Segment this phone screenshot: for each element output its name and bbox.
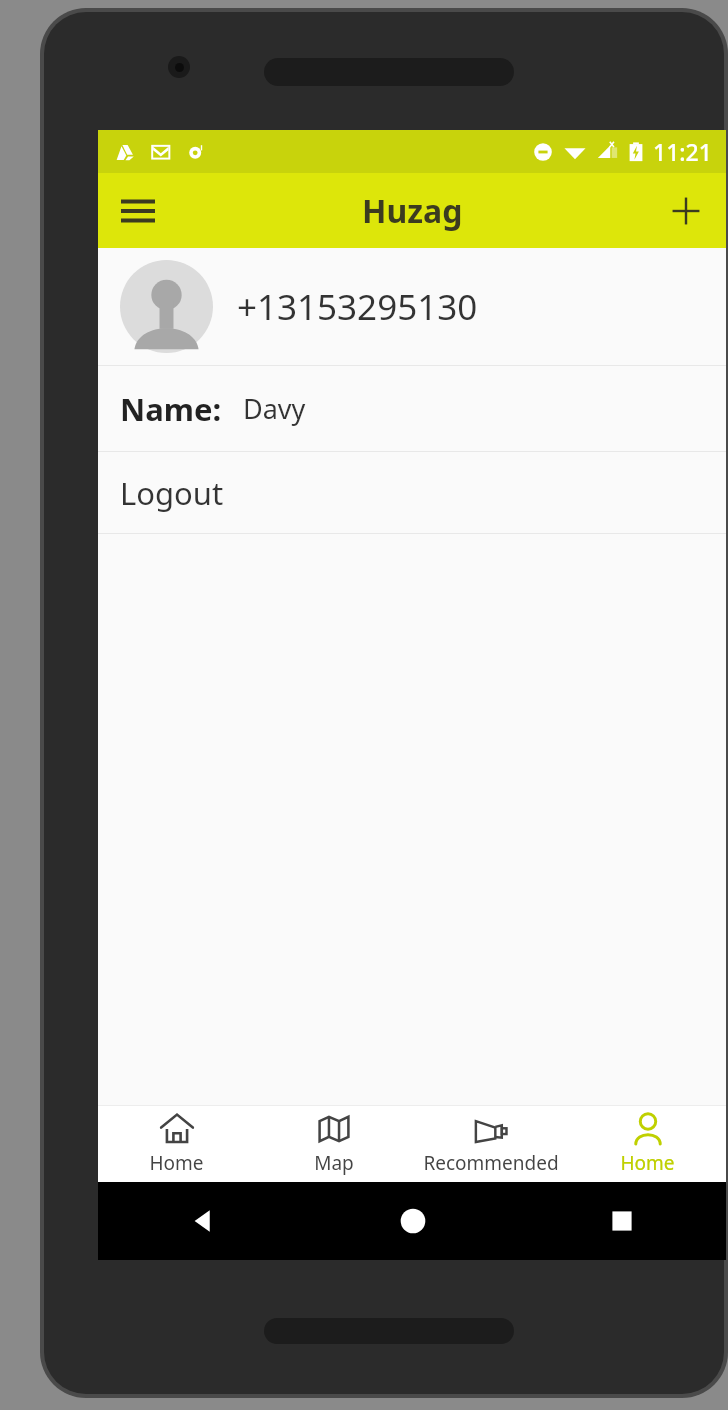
button[interactable]: Map xyxy=(255,1105,412,1182)
staticText: 11:21 xyxy=(653,136,712,167)
staticText: Name: xyxy=(120,388,222,430)
staticText: +13153295130 xyxy=(237,283,478,331)
button[interactable]: Recommended xyxy=(412,1105,569,1182)
staticText: Recommended xyxy=(423,1150,559,1176)
button[interactable]: +13153295130 xyxy=(98,248,726,365)
button[interactable]: Home xyxy=(569,1105,726,1182)
staticText: Home xyxy=(620,1150,675,1176)
button[interactable]: Home xyxy=(98,1105,255,1182)
staticText: Davy xyxy=(243,390,306,427)
staticText: Logout xyxy=(120,472,224,514)
staticText: Home xyxy=(149,1150,204,1176)
staticText: Huzag xyxy=(362,189,463,233)
button[interactable]: Back xyxy=(98,1182,308,1260)
button[interactable]: Home xyxy=(308,1182,517,1260)
button[interactable]: Name: xyxy=(98,366,726,451)
button[interactable]: Logout xyxy=(98,452,726,533)
button[interactable]: Add xyxy=(654,179,718,243)
staticText: Map xyxy=(314,1150,354,1176)
button[interactable]: Recent apps xyxy=(517,1182,726,1260)
button[interactable]: Open navigation menu xyxy=(106,179,170,243)
